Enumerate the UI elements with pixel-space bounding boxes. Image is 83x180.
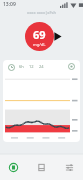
button[interactable]: Settings (55, 154, 83, 180)
button[interactable]: 6h (18, 63, 25, 70)
staticText: 69 (33, 27, 46, 42)
button[interactable]: Time range (7, 63, 15, 71)
button[interactable]: Home (0, 154, 27, 180)
staticText: 13:09 (3, 1, 16, 8)
button[interactable]: 12 (28, 63, 35, 70)
button[interactable]: Settings (67, 62, 76, 71)
staticText: mg/dL (33, 42, 46, 47)
staticText: 24 (39, 64, 44, 69)
button[interactable]: 69 (25, 22, 54, 51)
button[interactable]: 24 (38, 63, 45, 70)
other: Trend steady (53, 31, 62, 42)
staticText: 12 (29, 64, 34, 69)
button[interactable]: Log (27, 154, 55, 180)
staticText: 6h (19, 64, 24, 69)
staticText: xxxx xxxx|xFsh (27, 10, 56, 15)
